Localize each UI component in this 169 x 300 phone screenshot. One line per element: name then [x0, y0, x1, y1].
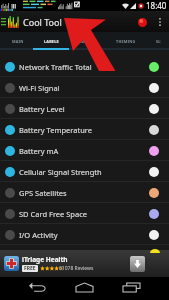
staticText: FREE [24, 265, 36, 272]
staticText: MAIN [12, 39, 24, 44]
button[interactable]: SD Card Free Space [0, 203, 169, 224]
button[interactable]: Wi-Fi Signal [0, 77, 169, 98]
button[interactable]: GAUGES [69, 32, 106, 50]
button[interactable]: Battery mA [0, 140, 169, 161]
staticText: Wi-Fi Signal [19, 83, 60, 93]
button[interactable]: Menu [1, 18, 6, 25]
button[interactable]: Cellular Signal Strength [0, 161, 169, 182]
button[interactable]: Back [26, 280, 49, 295]
staticText: Cool Tool [23, 16, 62, 28]
button[interactable]: MAIN [2, 32, 34, 50]
staticText: 61078 Reviews [59, 265, 94, 272]
staticText: GAUGES [79, 39, 96, 44]
staticText: Battery Temperature [19, 125, 93, 135]
staticText: I/O Activity [19, 230, 58, 240]
button[interactable]: THEMING [106, 32, 146, 50]
staticText: SLIDERS [156, 39, 161, 44]
button[interactable]: Home [73, 280, 96, 295]
button[interactable]: Battery Temperature [0, 119, 169, 140]
staticText: Battery mA [19, 146, 59, 156]
staticText: Battery Level [19, 104, 65, 114]
staticText: iTriage Health [22, 255, 68, 264]
staticText: THEMING [116, 39, 136, 44]
button[interactable]: Recent apps [120, 280, 143, 295]
staticText: 18:40 [146, 0, 167, 11]
button[interactable]: Download [130, 256, 145, 272]
button[interactable]: Battery Level [0, 98, 169, 119]
staticText: Cellular Signal Strength [19, 167, 102, 177]
button[interactable]: More options [153, 12, 167, 32]
staticText: GPS Satellites [19, 188, 67, 198]
button[interactable]: Network Traffic Total [0, 56, 169, 77]
button[interactable]: SLIDERS [146, 32, 169, 50]
button[interactable]: LABELS [34, 32, 69, 50]
button[interactable]: iTriage Health [0, 250, 169, 277]
button[interactable]: GPS Satellites [0, 182, 169, 203]
staticText: LABELS [44, 39, 59, 44]
button[interactable]: Record [132, 12, 152, 32]
staticText: SD Card Free Space [19, 209, 88, 219]
staticText: Network Traffic Total [19, 62, 92, 72]
button[interactable]: I/O Activity [0, 224, 169, 245]
